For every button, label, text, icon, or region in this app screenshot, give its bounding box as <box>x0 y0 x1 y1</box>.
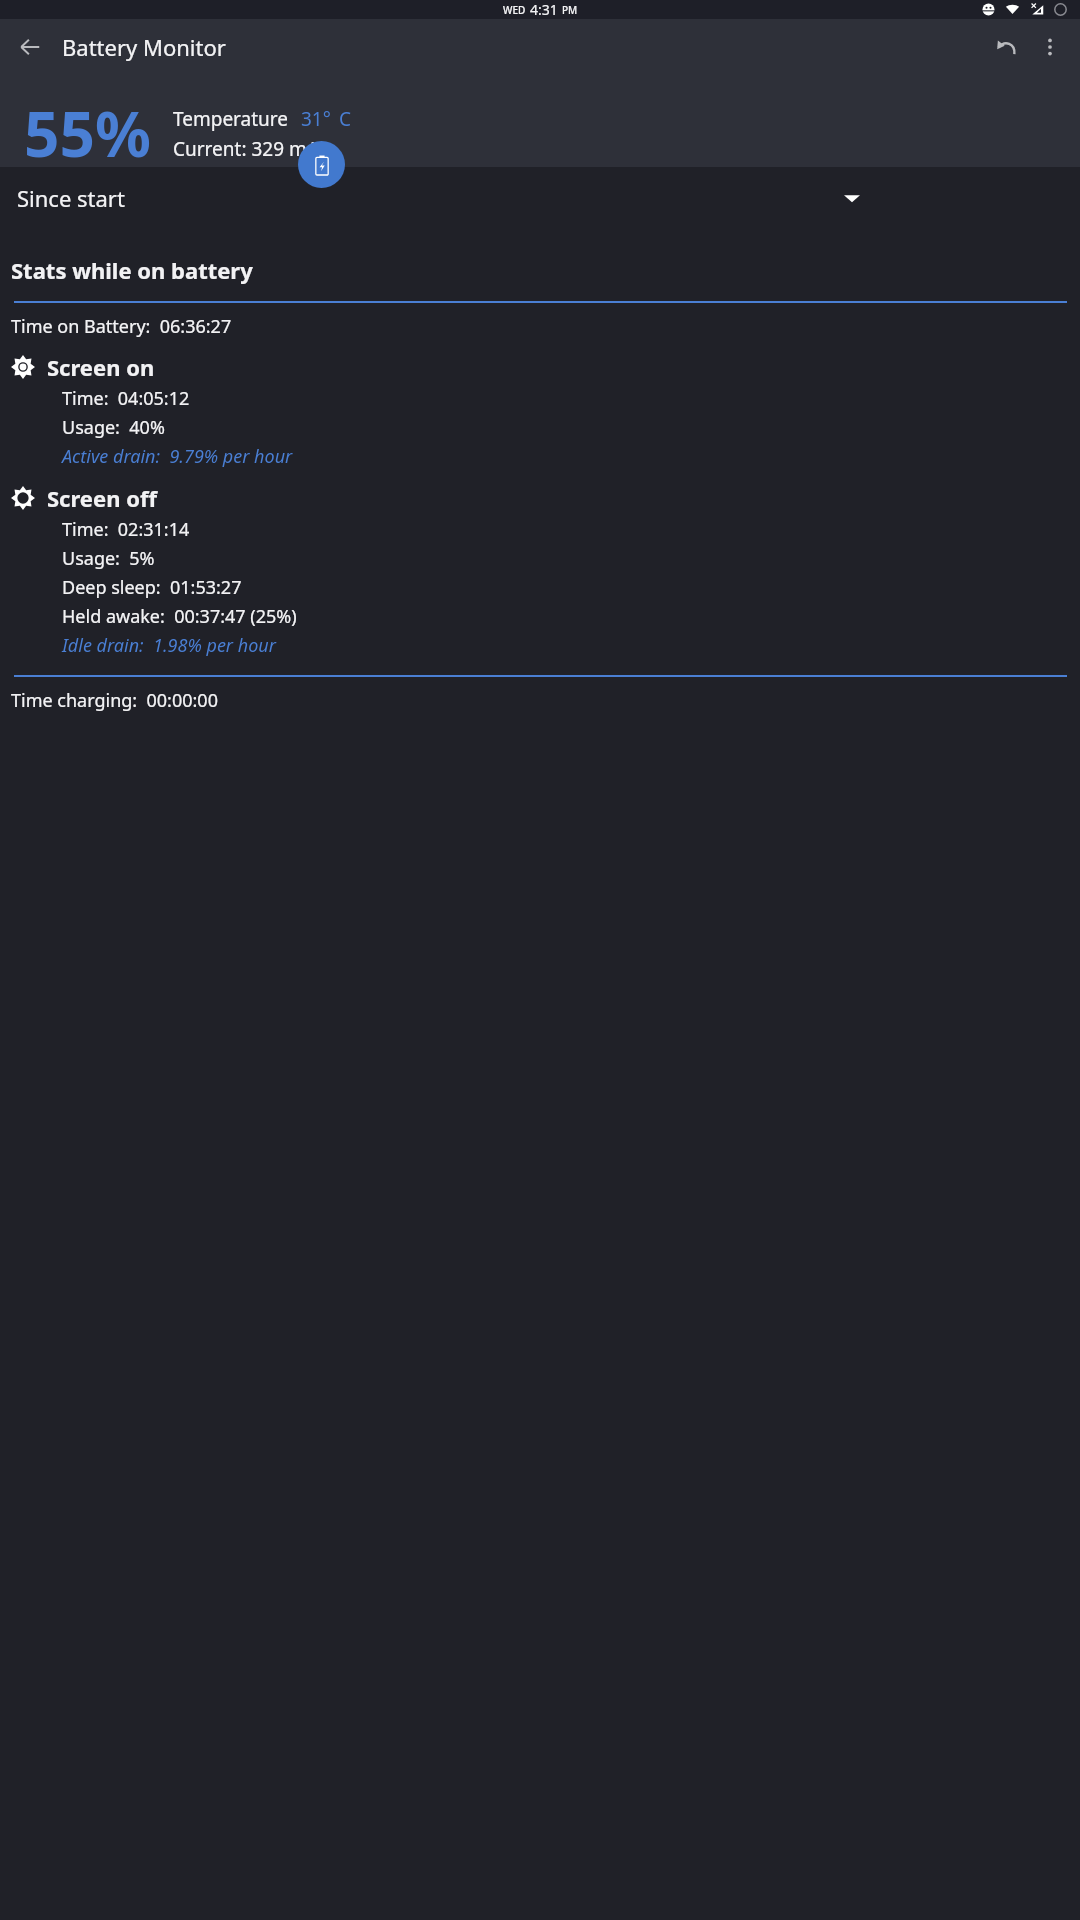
button[interactable]: Screen on <box>11 352 1080 382</box>
staticText: Battery Monitor <box>62 32 226 62</box>
staticText: Deep sleep: 01:53:27 <box>62 575 242 600</box>
staticText: Temperature <box>173 106 289 132</box>
staticText: Time charging: 00:00:00 <box>11 688 218 713</box>
staticText: PM <box>562 3 578 17</box>
staticText: Time: 02:31:14 <box>62 517 190 542</box>
staticText: Discharging <box>173 166 281 192</box>
staticText: Stats while on battery <box>11 255 253 285</box>
staticText: Screen on <box>47 352 155 382</box>
staticText: 55% <box>24 91 151 175</box>
staticText: Current: 329 mA <box>173 136 319 162</box>
staticText: Usage: 40% <box>62 415 165 440</box>
staticText: WED <box>503 3 526 17</box>
staticText: Time on Battery: 06:36:27 <box>11 314 232 339</box>
staticText: Held awake: 00:37:47 (25%) <box>62 604 297 629</box>
staticText: Usage: 5% <box>62 546 155 571</box>
button[interactable]: Since start <box>17 167 860 229</box>
staticText: Screen off <box>47 483 157 513</box>
staticText: Active drain: 9.79% per hour <box>62 444 293 469</box>
staticText: C <box>339 106 352 132</box>
button[interactable]: More options <box>1028 25 1072 69</box>
staticText: 4:31 <box>530 0 558 19</box>
button[interactable]: Reset <box>984 25 1028 69</box>
button[interactable]: Back <box>8 25 52 69</box>
staticText: Idle drain: 1.98% per hour <box>62 633 276 658</box>
staticText: Since start <box>17 183 125 213</box>
staticText: 31° <box>301 106 331 132</box>
staticText: Time: 04:05:12 <box>62 386 190 411</box>
button[interactable]: Screen off <box>11 483 1080 513</box>
button[interactable]: Battery charge details <box>298 141 345 188</box>
